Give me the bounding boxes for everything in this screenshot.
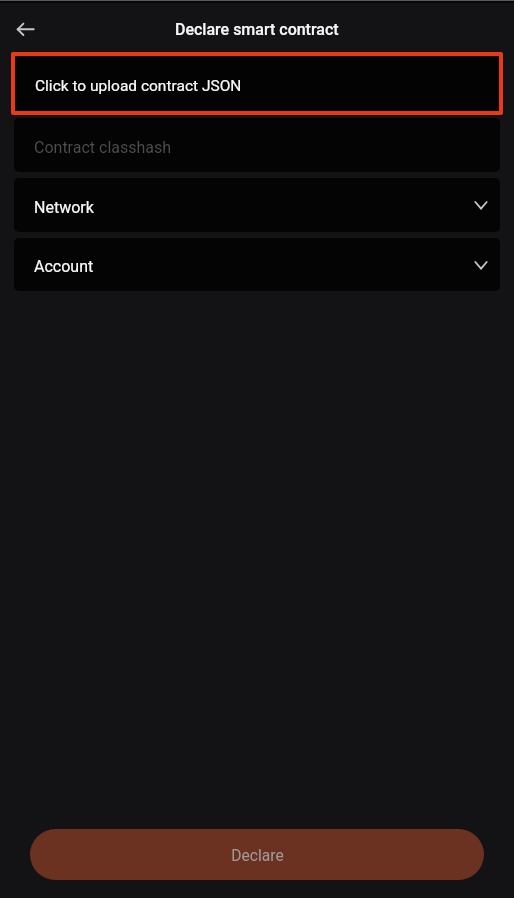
staticText: Contract classhash <box>34 138 172 157</box>
button[interactable]: Back <box>9 12 41 44</box>
button[interactable]: Network <box>14 178 500 232</box>
button[interactable]: Contract classhash <box>14 118 500 172</box>
staticText: Declare <box>231 847 284 865</box>
button[interactable]: Account <box>14 238 500 291</box>
staticText: Click to upload contract JSON <box>35 77 242 95</box>
button[interactable]: Click to upload contract JSON <box>11 52 503 115</box>
button[interactable]: Declare <box>30 829 484 880</box>
staticText: Network <box>34 198 94 217</box>
staticText: Account <box>34 257 94 276</box>
staticText: Declare smart contract <box>175 20 339 39</box>
